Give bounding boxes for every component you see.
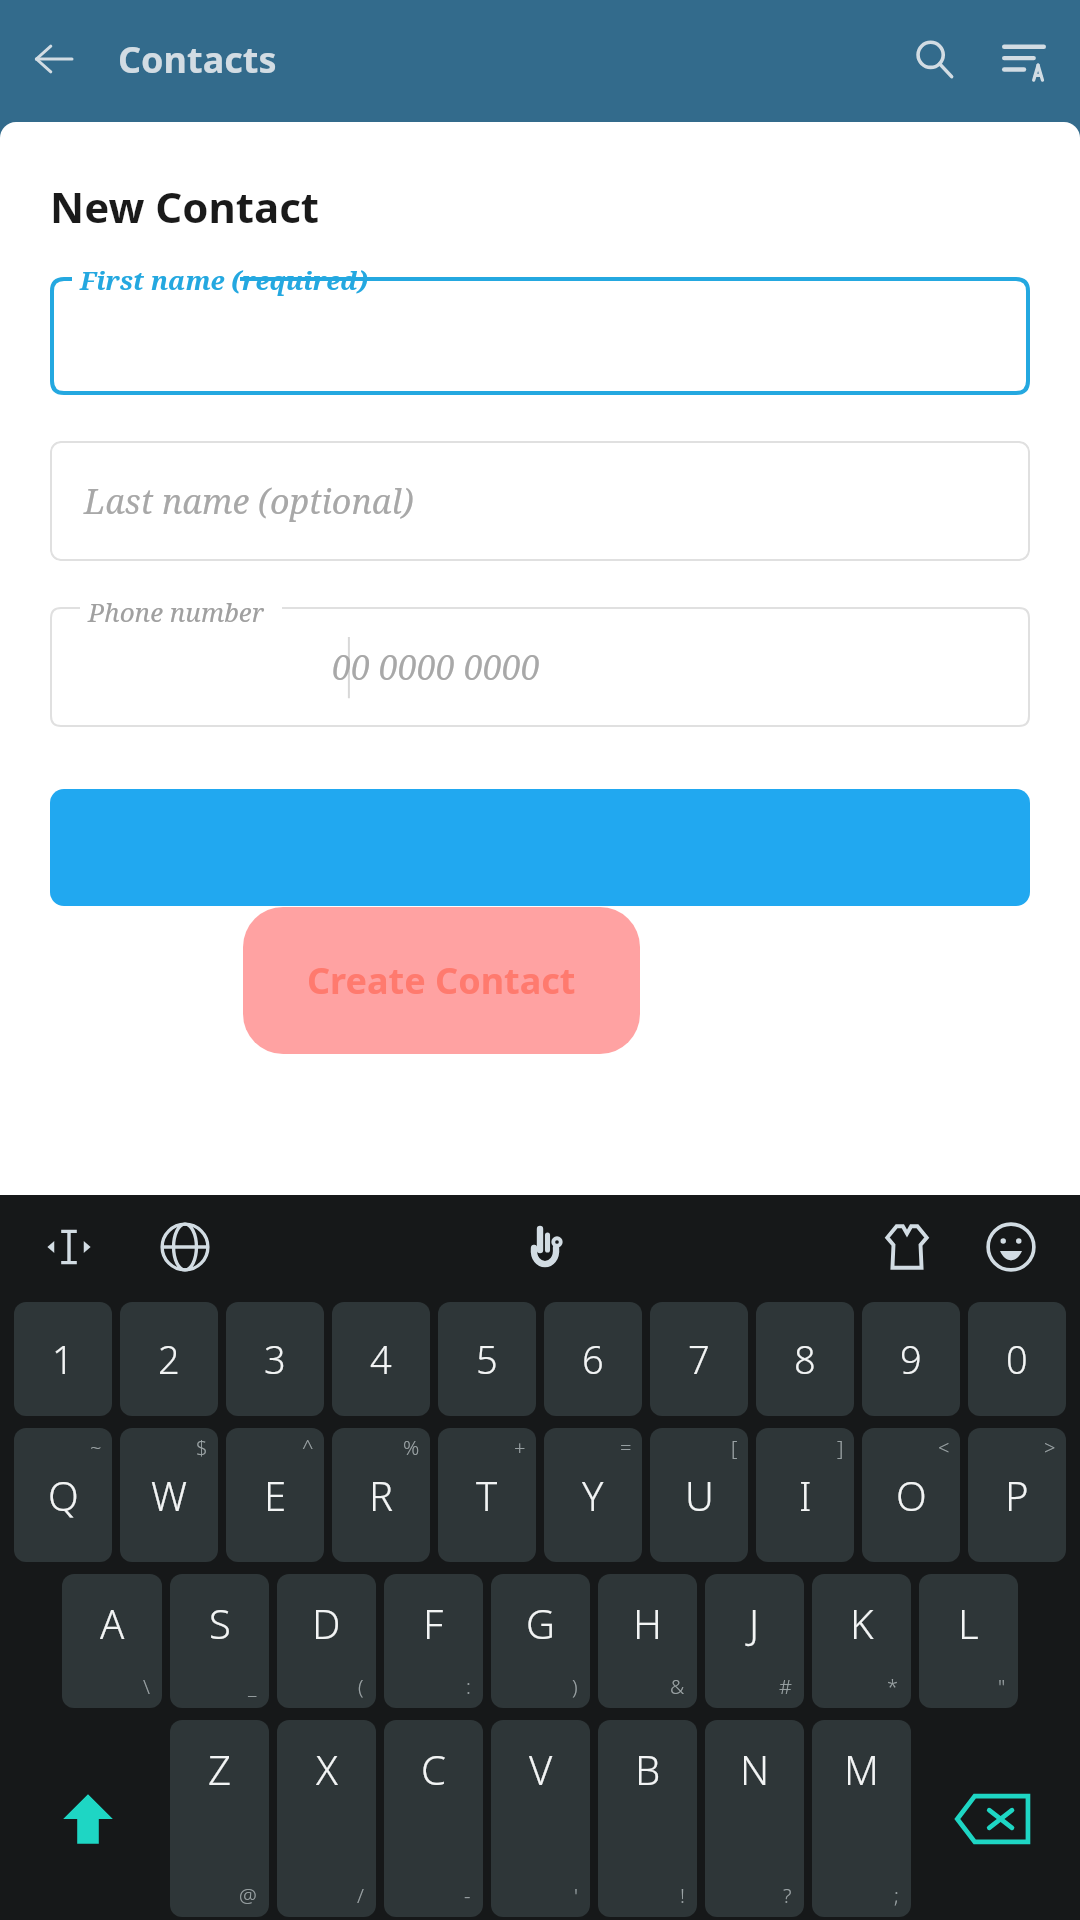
staticText: Last name (optional) <box>84 478 414 524</box>
button[interactable]: O <box>862 1428 960 1562</box>
staticText: First name (required) <box>80 262 368 297</box>
staticText: S <box>209 1596 231 1650</box>
staticText: < <box>938 1434 950 1461</box>
button[interactable]: F <box>384 1574 483 1708</box>
button[interactable]: Q <box>14 1428 112 1562</box>
button[interactable]: J <box>705 1574 804 1708</box>
button[interactable]: D <box>277 1574 376 1708</box>
staticText: 8 <box>794 1333 816 1385</box>
staticText: N <box>740 1742 770 1796</box>
staticText: O <box>896 1468 927 1522</box>
button[interactable]: 7 <box>650 1302 748 1416</box>
button[interactable]: U <box>650 1428 748 1562</box>
button[interactable]: Phone number <box>50 607 1030 727</box>
staticText: & <box>670 1673 685 1700</box>
button[interactable]: 1 <box>14 1302 112 1416</box>
button[interactable]: R <box>332 1428 430 1562</box>
staticText: ~ <box>90 1434 102 1461</box>
staticText: A <box>100 1596 125 1650</box>
button[interactable]: Back <box>18 23 90 95</box>
button[interactable]: Move cursor <box>30 1208 108 1286</box>
staticText: ^ <box>302 1434 314 1461</box>
staticText: > <box>1044 1434 1056 1461</box>
staticText: M <box>844 1742 879 1796</box>
staticText: 1 <box>52 1333 74 1385</box>
staticText: ? <box>783 1882 792 1909</box>
staticText: " <box>998 1673 1006 1700</box>
button[interactable]: X <box>277 1720 376 1917</box>
button[interactable]: Change language <box>146 1208 224 1286</box>
staticText: 2 <box>158 1333 180 1385</box>
staticText: E <box>264 1468 287 1522</box>
button[interactable]: I <box>756 1428 854 1562</box>
button[interactable]: A <box>62 1574 162 1708</box>
staticText: Z <box>208 1742 231 1796</box>
button[interactable]: Z <box>170 1720 269 1917</box>
staticText: Phone number <box>88 594 264 629</box>
staticText: 5 <box>476 1333 498 1385</box>
staticText: ( <box>358 1673 364 1700</box>
button[interactable]: P <box>968 1428 1066 1562</box>
staticText: \ <box>143 1673 150 1700</box>
button[interactable]: K <box>812 1574 911 1708</box>
button[interactable] <box>50 789 1030 906</box>
staticText: R <box>369 1468 393 1522</box>
button[interactable]: 3 <box>226 1302 324 1416</box>
button[interactable]: N <box>705 1720 804 1917</box>
staticText: C <box>421 1742 446 1796</box>
staticText: F <box>423 1596 444 1650</box>
staticText: H <box>633 1596 662 1650</box>
staticText: 4 <box>370 1333 392 1385</box>
staticText: Q <box>48 1468 79 1522</box>
button[interactable]: 4 <box>332 1302 430 1416</box>
button[interactable]: Themes <box>868 1208 946 1286</box>
button[interactable]: G <box>491 1574 590 1708</box>
button[interactable]: M <box>812 1720 911 1917</box>
button[interactable]: 5 <box>438 1302 536 1416</box>
button[interactable]: B <box>598 1720 697 1917</box>
staticText: W <box>151 1468 187 1522</box>
button[interactable]: 8 <box>756 1302 854 1416</box>
button[interactable]: C <box>384 1720 483 1917</box>
staticText: ' <box>574 1882 578 1909</box>
button[interactable]: Search <box>896 21 972 97</box>
button[interactable]: Backspace <box>919 1721 1066 1916</box>
button[interactable]: 9 <box>862 1302 960 1416</box>
staticText: + <box>514 1434 526 1461</box>
staticText: $ <box>196 1434 208 1461</box>
staticText: @ <box>239 1882 257 1909</box>
staticText: [ <box>731 1434 738 1461</box>
staticText: K <box>850 1596 874 1650</box>
button[interactable]: S <box>170 1574 269 1708</box>
staticText: ) <box>572 1673 578 1700</box>
staticText: 6 <box>582 1333 604 1385</box>
staticText: _ <box>248 1673 257 1700</box>
button[interactable]: Sort alphabetically <box>986 21 1062 97</box>
staticText: Y <box>582 1468 604 1522</box>
staticText: ; <box>894 1882 899 1909</box>
button[interactable]: 2 <box>120 1302 218 1416</box>
staticText: Create Contact <box>307 956 576 1005</box>
staticText: # <box>779 1673 792 1700</box>
button[interactable]: 0 <box>968 1302 1066 1416</box>
button[interactable]: T <box>438 1428 536 1562</box>
button[interactable]: First name (required) <box>50 277 1030 395</box>
button[interactable]: 6 <box>544 1302 642 1416</box>
staticText: 3 <box>264 1333 286 1385</box>
button[interactable]: E <box>226 1428 324 1562</box>
staticText: V <box>529 1742 553 1796</box>
button[interactable]: Y <box>544 1428 642 1562</box>
staticText: ] <box>837 1434 844 1461</box>
button[interactable]: L <box>919 1574 1018 1708</box>
button[interactable]: V <box>491 1720 590 1917</box>
button[interactable]: H <box>598 1574 697 1708</box>
button[interactable]: Last name (optional) <box>50 441 1030 561</box>
button[interactable]: Gesture typing <box>507 1208 585 1286</box>
staticText: I <box>799 1468 812 1522</box>
staticText: G <box>526 1596 555 1650</box>
staticText: D <box>312 1596 341 1650</box>
button[interactable]: Shift <box>14 1721 162 1916</box>
button[interactable]: W <box>120 1428 218 1562</box>
staticText: % <box>403 1434 420 1461</box>
button[interactable]: Emoji <box>972 1208 1050 1286</box>
